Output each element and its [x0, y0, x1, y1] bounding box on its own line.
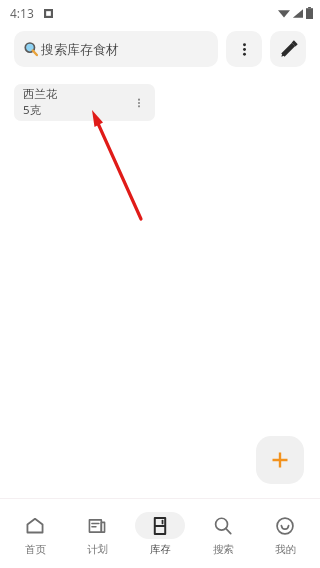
button[interactable]: 库存	[132, 510, 188, 558]
button[interactable]: 搜索	[195, 510, 251, 558]
button[interactable]: Add	[256, 436, 304, 484]
button[interactable]: 我的	[257, 510, 313, 558]
staticText: 我的	[275, 543, 296, 556]
staticText: 4:13	[10, 5, 34, 21]
button[interactable]: 首页	[7, 510, 63, 558]
staticText: 搜索	[213, 543, 234, 556]
button[interactable]: Edit	[270, 31, 306, 67]
button[interactable]: More options	[226, 31, 262, 67]
staticText: 西兰花	[23, 87, 58, 101]
staticText: 库存	[150, 543, 171, 556]
staticText: 搜索库存食材	[41, 41, 119, 57]
button[interactable]: 西兰花	[14, 84, 155, 121]
button[interactable]: 计划	[69, 510, 125, 558]
staticText: 首页	[25, 543, 46, 556]
button[interactable]: 搜索库存食材	[14, 31, 218, 67]
staticText: 计划	[87, 543, 108, 556]
button[interactable]: Item menu	[131, 95, 147, 111]
staticText: 5克	[23, 102, 42, 118]
